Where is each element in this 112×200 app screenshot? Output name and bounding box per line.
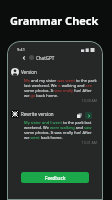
button[interactable]: Back bbox=[21, 55, 27, 61]
staticText: 9:41 bbox=[17, 47, 25, 52]
staticText: My sister and I went to the park last we… bbox=[24, 120, 97, 140]
button[interactable]: Feedback bbox=[21, 172, 89, 183]
staticText: Feedback bbox=[45, 175, 66, 181]
button[interactable]: Share bbox=[85, 112, 92, 119]
staticText: 10:31 AM bbox=[11, 140, 97, 145]
button[interactable]: Copy bbox=[76, 112, 83, 119]
staticText: Rewrite version bbox=[21, 111, 54, 117]
staticText: Grammar Check bbox=[10, 13, 99, 28]
staticText: ChatGPT bbox=[36, 55, 55, 61]
staticText: Version bbox=[21, 69, 37, 75]
staticText: 10:30 AM bbox=[11, 98, 97, 103]
staticText: Me and my sister was went to the park la… bbox=[24, 78, 97, 98]
